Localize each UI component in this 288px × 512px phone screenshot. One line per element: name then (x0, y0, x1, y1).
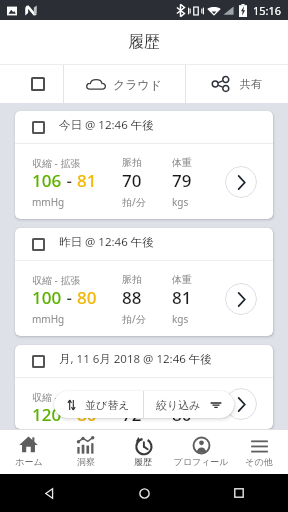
staticText: - (62, 286, 77, 309)
staticText: mmHg (32, 195, 65, 209)
staticText: ホーム (15, 456, 43, 467)
staticText: - (62, 403, 77, 426)
staticText: 80 (172, 403, 192, 426)
staticText: 拍/分 (122, 312, 146, 326)
button[interactable]: 絞り込み (144, 391, 234, 418)
staticText: 共有 (240, 77, 262, 91)
staticText: 体重 (172, 156, 192, 169)
button[interactable]: Details (225, 388, 257, 420)
staticText: 脈拍 (122, 156, 142, 169)
staticText: 体重 (172, 273, 192, 286)
button[interactable]: クラウド (64, 65, 185, 103)
staticText: 拍/分 (122, 195, 146, 209)
staticText: 履歴 (128, 32, 160, 52)
other: Recents (234, 488, 244, 498)
button[interactable]: その他 (230, 430, 288, 474)
staticText: - (62, 169, 77, 192)
staticText: 81 (77, 169, 97, 192)
button[interactable]: Select all (0, 65, 63, 103)
staticText: 88 (122, 286, 142, 309)
button[interactable]: プロフィール (172, 430, 230, 474)
button[interactable]: 洞察 (57, 430, 114, 474)
staticText: mmHg (32, 312, 65, 326)
button[interactable]: ホーム (0, 430, 57, 474)
other: Back (44, 488, 55, 499)
button[interactable]: 月, 11 6月 2018 @ 12:46 午後 (15, 345, 273, 429)
staticText: 収縮 - 拡張 (32, 390, 81, 404)
button[interactable]: 共有 (186, 65, 288, 103)
staticText: クラウド (113, 77, 163, 92)
staticText: 15:16 (253, 3, 282, 18)
button[interactable]: Details (225, 166, 257, 198)
staticText: kgs (172, 312, 189, 326)
staticText: 月, 11 6月 2018 @ 12:46 午後 (59, 351, 212, 367)
staticText: 100 (32, 286, 62, 309)
staticText: 収縮 - 拡張 (32, 156, 81, 170)
staticText: 並び替え (85, 398, 130, 412)
staticText: 収縮 - 拡張 (32, 273, 81, 287)
staticText: 今日 @ 12:46 午後 (59, 117, 154, 133)
staticText: 80 (77, 403, 97, 426)
staticText: 昨日 @ 12:46 午後 (59, 234, 154, 250)
staticText: 72 (122, 403, 142, 426)
staticText: 脈拍 (122, 390, 142, 403)
staticText: 79 (172, 169, 192, 192)
staticText: 絞り込み (156, 398, 201, 412)
button[interactable]: 履歴 (114, 430, 172, 474)
button[interactable]: 並び替え (54, 391, 143, 418)
staticText: 履歴 (134, 456, 152, 467)
staticText: 81 (172, 286, 192, 309)
other: Home (139, 488, 150, 499)
staticText: 体重 (172, 390, 192, 403)
button[interactable]: 今日 @ 12:46 午後 (15, 111, 273, 219)
staticText: 120 (32, 403, 62, 426)
staticText: 70 (122, 169, 142, 192)
staticText: 80 (77, 286, 97, 309)
button[interactable]: Details (225, 283, 257, 315)
staticText: 脈拍 (122, 273, 142, 286)
staticText: 洞察 (77, 456, 95, 467)
staticText: kgs (172, 195, 189, 209)
staticText: 106 (32, 169, 62, 192)
button[interactable]: 昨日 @ 12:46 午後 (15, 228, 273, 336)
staticText: プロフィール (173, 456, 229, 467)
staticText: その他 (245, 456, 273, 467)
